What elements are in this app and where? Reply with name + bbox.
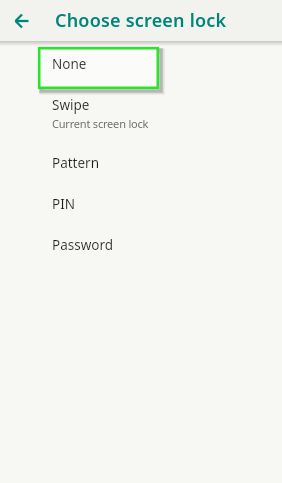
staticText: Password: [52, 236, 114, 254]
staticText: Swipe: [52, 96, 90, 114]
button[interactable]: Swipe: [0, 85, 282, 142]
staticText: None: [52, 55, 87, 73]
staticText: Pattern: [52, 154, 100, 172]
button[interactable]: [0, 0, 41, 41]
button[interactable]: None: [0, 41, 282, 85]
staticText: Choose screen lock: [55, 8, 227, 33]
button[interactable]: Pattern: [0, 142, 282, 183]
button[interactable]: PIN: [0, 183, 282, 224]
staticText: Current screen lock: [52, 116, 149, 131]
button[interactable]: Password: [0, 224, 282, 265]
staticText: PIN: [52, 195, 76, 213]
